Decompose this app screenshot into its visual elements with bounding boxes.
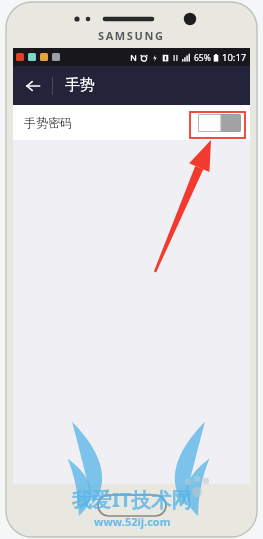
staticText: 我爱IT技术网	[72, 486, 192, 513]
staticText: 65%	[194, 52, 211, 64]
staticText: www.52ij.com	[94, 514, 171, 529]
button[interactable]: Back	[13, 66, 52, 105]
staticText: 手势密码	[24, 115, 72, 130]
button[interactable]: 手势密码开关	[198, 114, 241, 132]
staticText: 手势	[65, 76, 95, 95]
button[interactable]: 手势密码	[13, 105, 250, 140]
staticText: SAMSUNG	[98, 28, 165, 43]
staticText: 10:17	[222, 51, 247, 64]
